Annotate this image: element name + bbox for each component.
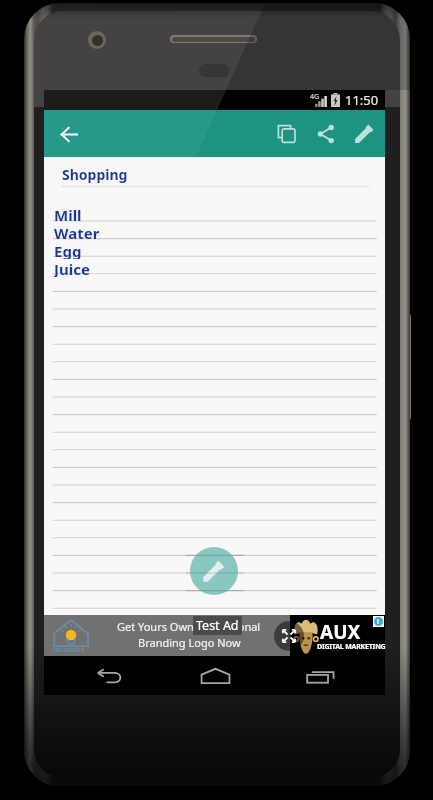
button[interactable]: Juice	[44, 259, 385, 277]
button[interactable]: Water	[44, 223, 385, 241]
button[interactable]: Edit	[345, 110, 384, 157]
button[interactable]: Mill	[44, 205, 385, 223]
staticText: Juice	[54, 259, 90, 277]
button[interactable]: Back	[70, 656, 150, 695]
button[interactable]: New note	[190, 547, 238, 595]
button[interactable]: Egg	[44, 241, 385, 259]
staticText: AUX	[320, 619, 361, 645]
staticText: Egg	[54, 241, 82, 259]
staticText: Branding Logo Now	[138, 635, 241, 650]
staticText: HEUSENER	[53, 646, 85, 654]
staticText: Water	[54, 223, 100, 241]
button[interactable]: Copy	[267, 110, 306, 157]
staticText: 11:50	[345, 91, 379, 109]
staticText: Test Ad	[196, 617, 239, 634]
button[interactable]: Expand ad	[274, 621, 304, 651]
staticText: Shopping	[62, 165, 128, 184]
staticText: i	[377, 617, 380, 626]
button[interactable]: Recents	[280, 656, 360, 695]
button[interactable]: HEUSENER	[44, 615, 385, 656]
button[interactable]: Shopping	[44, 157, 385, 186]
staticText: 4G	[310, 92, 320, 102]
button[interactable]: Share	[306, 110, 345, 157]
button[interactable]: Back	[47, 112, 91, 156]
staticText: Mill	[54, 205, 82, 223]
staticText: DIGITAL MARKETING	[317, 642, 386, 652]
staticText: Get Yours Own Professional	[117, 619, 261, 634]
button[interactable]: Home	[175, 656, 255, 695]
